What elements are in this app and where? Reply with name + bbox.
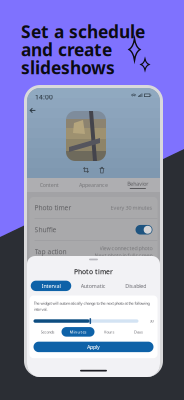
staticText: Seconds: [40, 329, 54, 334]
staticText: slideshows: [21, 56, 115, 79]
staticText: interval.: [33, 307, 47, 312]
staticText: Every 30 minutes: [110, 204, 152, 211]
staticText: Next photo in full screen: [94, 252, 152, 259]
staticText: Behavior: [127, 180, 148, 187]
staticText: The widget will automatically change to …: [33, 301, 149, 306]
button[interactable]: Tap action: [29, 241, 157, 262]
staticText: Set a schedule: [21, 20, 145, 43]
staticText: Photo timer: [34, 203, 71, 212]
staticText: Photo timer: [74, 267, 113, 276]
button[interactable]: Minutes: [61, 327, 94, 337]
staticText: Shuffle: [34, 225, 56, 234]
staticText: Hours: [103, 329, 114, 334]
button[interactable]: Apply: [33, 342, 153, 352]
button[interactable]: Automatic: [73, 281, 114, 291]
staticText: Content: [40, 181, 59, 189]
staticText: and create: [21, 38, 112, 61]
button[interactable]: Disabled: [115, 281, 156, 291]
staticText: View connected photo: [99, 244, 152, 252]
staticText: 14:00: [35, 93, 53, 101]
button[interactable]: Interval: [31, 281, 71, 291]
staticText: Interval: [41, 282, 60, 289]
button[interactable]: Appearance: [71, 178, 116, 192]
button[interactable]: Content: [27, 178, 71, 192]
button[interactable]: Behavior: [116, 178, 160, 192]
button[interactable]: Shuffle: [29, 219, 157, 240]
staticText: Tap action: [34, 247, 66, 256]
button[interactable]: Days: [123, 327, 153, 337]
button[interactable]: Delete: [99, 167, 105, 173]
staticText: Days: [134, 329, 143, 334]
button[interactable]: Photo timer: [29, 197, 157, 218]
staticText: Appearance: [79, 181, 108, 189]
button[interactable]: Hours: [94, 327, 123, 337]
staticText: Disabled: [125, 282, 146, 289]
button[interactable]: Crop: [83, 167, 89, 173]
staticText: 30: [149, 318, 153, 324]
button[interactable]: Seconds: [33, 327, 61, 337]
staticText: Apply: [87, 343, 100, 350]
staticText: Minutes: [69, 329, 86, 334]
staticText: Automatic: [81, 282, 106, 289]
